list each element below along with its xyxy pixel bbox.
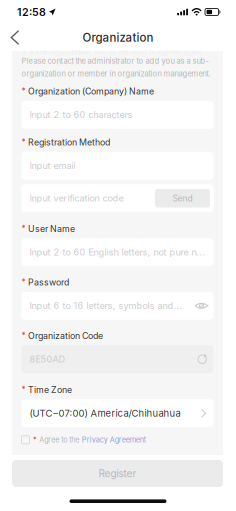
staticText: Time Zone <box>28 384 72 395</box>
button[interactable]: Show password <box>194 301 208 311</box>
staticText: * <box>21 331 25 341</box>
staticText: * <box>33 435 37 444</box>
staticText: Registration Method <box>28 137 110 148</box>
staticText: Send <box>172 193 192 203</box>
button[interactable]: Refresh organization code <box>197 354 207 365</box>
staticText: * <box>21 277 25 287</box>
staticText: * <box>21 137 25 147</box>
button[interactable]: (UTC−07:00) America/Chihuahua <box>12 399 223 427</box>
button[interactable]: Send <box>155 189 210 207</box>
staticText: Input 2 to 60 characters <box>29 109 132 120</box>
staticText: User Name <box>28 223 75 234</box>
button[interactable]: * <box>12 433 223 446</box>
staticText: Privacy Agreement <box>82 435 146 444</box>
staticText: Organization <box>82 31 153 44</box>
staticText: organization or member in organization m… <box>21 69 210 78</box>
staticText: Input verification code <box>29 193 123 204</box>
staticText: * <box>21 86 25 96</box>
staticText: (UTC−07:00) America/Chihuahua <box>29 408 180 419</box>
staticText: Agree to the <box>39 435 79 444</box>
staticText: Input 2 to 60 English letters, not pure … <box>29 247 205 258</box>
staticText: Input 6 to 16 letters, symbols and... <box>29 300 182 311</box>
staticText: Password <box>28 277 69 288</box>
staticText: in a sub-organization, you do not need t… <box>21 48 203 56</box>
staticText: 8E50AD <box>29 354 65 365</box>
staticText: Organization (Company) Name <box>28 86 154 97</box>
staticText: Organization Code <box>28 330 103 341</box>
button[interactable]: Register <box>0 460 236 487</box>
staticText: 12:58 <box>17 5 46 18</box>
staticText: Register <box>98 467 136 480</box>
staticText: Input email <box>29 160 75 171</box>
button[interactable]: Back <box>3 26 27 48</box>
staticText: * <box>21 385 25 395</box>
staticText: * <box>21 224 25 234</box>
staticText: Please contact the administrator to add … <box>21 56 208 66</box>
